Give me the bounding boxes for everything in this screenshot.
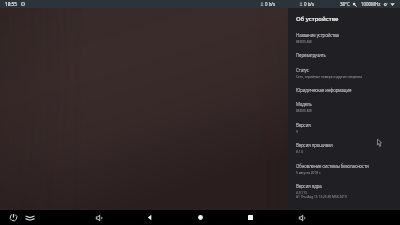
button[interactable]: Home <box>195 210 206 225</box>
button[interactable]: Модель <box>296 101 396 122</box>
staticText: Перезагрузить <box>296 52 326 58</box>
button[interactable]: Volume <box>296 210 307 225</box>
staticText: Юридическая информация <box>296 87 352 93</box>
staticText: Версия <box>296 122 311 128</box>
staticText: 88O0S-M8 <box>296 109 312 113</box>
staticText: Сеть, серийные номера и другие сведения <box>296 75 363 79</box>
staticText: 38°C <box>340 1 350 7</box>
staticText: Название устройства <box>296 32 339 38</box>
staticText: Об устройстве <box>296 15 339 23</box>
staticText: Версия прошивки <box>296 142 333 148</box>
staticText: Обновление системы безопасности <box>296 163 369 169</box>
button[interactable]: Версия ядра <box>296 183 396 203</box>
button[interactable]: Recent apps <box>245 210 256 225</box>
button[interactable]: Power <box>8 210 19 225</box>
staticText: 1000MHz <box>361 1 381 7</box>
staticText: 4.9.113 #1 Thu Aug 15 13:25:30 MSK 2019 <box>296 191 347 199</box>
button[interactable]: Юридическая информация <box>296 87 396 101</box>
staticText: 8.1.0 <box>296 150 304 154</box>
button[interactable]: Volume <box>93 210 104 225</box>
staticText: 88O0S-M8 <box>296 40 312 44</box>
button[interactable]: Статус <box>296 67 396 87</box>
staticText: 9 <box>296 130 298 134</box>
staticText: Модель <box>296 101 312 107</box>
button[interactable]: Версия <box>296 122 396 142</box>
staticText: Статус <box>296 67 309 73</box>
staticText: 0 b/s <box>304 1 315 7</box>
button[interactable]: Back <box>144 210 155 225</box>
staticText: 0 b/s <box>265 1 276 7</box>
button[interactable]: Перезагрузить <box>296 52 396 67</box>
staticText: Версия ядра <box>296 183 322 189</box>
button[interactable]: Expand status bar <box>24 210 35 225</box>
button[interactable]: Обновление системы безопасности <box>296 163 396 183</box>
staticText: 5 августа 2018 г. <box>296 171 322 175</box>
button[interactable]: Название устройства <box>296 32 396 52</box>
staticText: 18:55 <box>5 1 17 7</box>
button[interactable]: Версия прошивки <box>296 142 396 163</box>
